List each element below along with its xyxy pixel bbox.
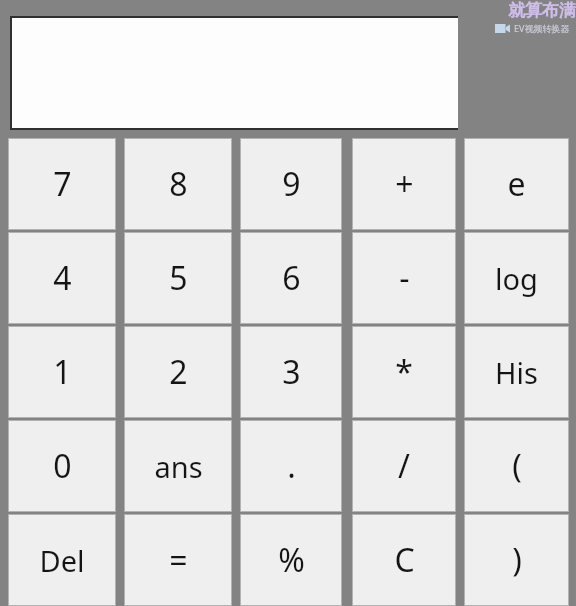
staticText: *: [395, 350, 413, 394]
staticText: 8: [169, 162, 188, 206]
button[interactable]: 8: [124, 138, 232, 230]
staticText: +: [395, 162, 414, 206]
button[interactable]: C: [352, 514, 456, 606]
button[interactable]: 9: [240, 138, 342, 230]
button[interactable]: %: [240, 514, 342, 606]
button[interactable]: 5: [124, 232, 232, 324]
staticText: ): [512, 538, 522, 582]
staticText: His: [495, 353, 538, 392]
staticText: 6: [282, 256, 301, 300]
staticText: ans: [154, 447, 203, 486]
button[interactable]: e: [464, 138, 569, 230]
button[interactable]: 7: [8, 138, 116, 230]
staticText: log: [495, 259, 538, 298]
staticText: 0: [53, 444, 72, 488]
button[interactable]: 3: [240, 326, 342, 418]
staticText: 就算布满: [508, 0, 576, 21]
staticText: 4: [53, 256, 72, 300]
staticText: 1: [53, 350, 72, 394]
staticText: =: [169, 538, 188, 582]
button[interactable]: *: [352, 326, 456, 418]
button[interactable]: Expression display: [10, 16, 458, 130]
button[interactable]: 1: [8, 326, 116, 418]
staticText: 5: [169, 256, 188, 300]
button[interactable]: -: [352, 232, 456, 324]
button[interactable]: ): [464, 514, 569, 606]
staticText: EV视频转换器: [514, 22, 570, 34]
staticText: Del: [39, 541, 85, 580]
staticText: 3: [282, 350, 301, 394]
button[interactable]: .: [240, 420, 342, 512]
button[interactable]: +: [352, 138, 456, 230]
button[interactable]: Del: [8, 514, 116, 606]
staticText: 9: [282, 162, 301, 206]
staticText: %: [278, 538, 305, 582]
button[interactable]: 2: [124, 326, 232, 418]
staticText: 2: [169, 350, 188, 394]
button[interactable]: ans: [124, 420, 232, 512]
button[interactable]: 4: [8, 232, 116, 324]
button[interactable]: /: [352, 420, 456, 512]
staticText: (: [512, 444, 522, 488]
staticText: C: [394, 538, 415, 582]
button[interactable]: 0: [8, 420, 116, 512]
button[interactable]: His: [464, 326, 569, 418]
button[interactable]: (: [464, 420, 569, 512]
button[interactable]: =: [124, 514, 232, 606]
staticText: /: [398, 444, 410, 488]
staticText: e: [507, 162, 526, 206]
button[interactable]: 6: [240, 232, 342, 324]
staticText: .: [287, 444, 296, 488]
staticText: 7: [53, 162, 72, 206]
staticText: -: [399, 256, 410, 300]
button[interactable]: log: [464, 232, 569, 324]
